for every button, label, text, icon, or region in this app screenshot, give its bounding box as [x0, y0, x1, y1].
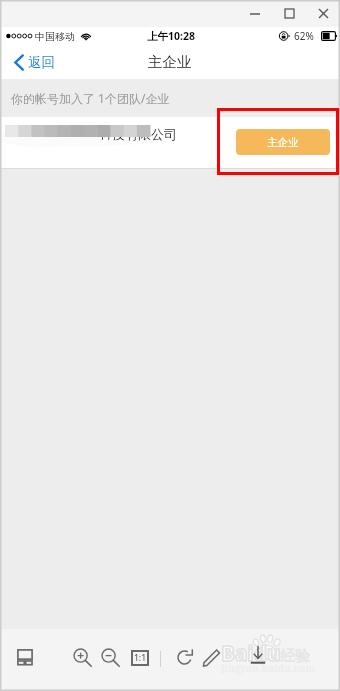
staticText: 1:1 [134, 652, 147, 664]
staticText: 经验 [280, 647, 310, 666]
button[interactable]: Zoom out [97, 644, 123, 670]
staticText: 62% [294, 29, 314, 43]
staticText: 中国移动 [35, 30, 75, 43]
staticText: 返回 [28, 54, 55, 71]
button[interactable]: Maximize [272, 1, 306, 26]
button[interactable]: Close [306, 1, 340, 26]
button[interactable]: Rotate [171, 644, 197, 670]
button[interactable]: 返回 [14, 54, 55, 71]
staticText: 上午10:28 [147, 29, 195, 43]
staticText: 你的帐号加入了 1个团队/企业 [11, 90, 170, 106]
button[interactable]: Zoom in [69, 644, 95, 670]
button[interactable]: Edit [198, 644, 224, 670]
staticText: jingyan.baidu.com [221, 661, 316, 675]
staticText: Baidu [221, 639, 281, 668]
staticText: 上海某某某网络科技有限公司 [8, 126, 177, 142]
staticText: Baidu [221, 639, 281, 668]
staticText: 主企业 [267, 136, 299, 149]
staticText: 主企业 [148, 53, 192, 71]
button[interactable]: 主企业 [236, 129, 330, 155]
button[interactable]: Actual size [127, 644, 153, 670]
button[interactable]: Page layout [12, 644, 38, 670]
button[interactable]: 上海某某某网络科技有限公司 [0, 117, 340, 168]
button[interactable]: Minimize [238, 1, 272, 26]
